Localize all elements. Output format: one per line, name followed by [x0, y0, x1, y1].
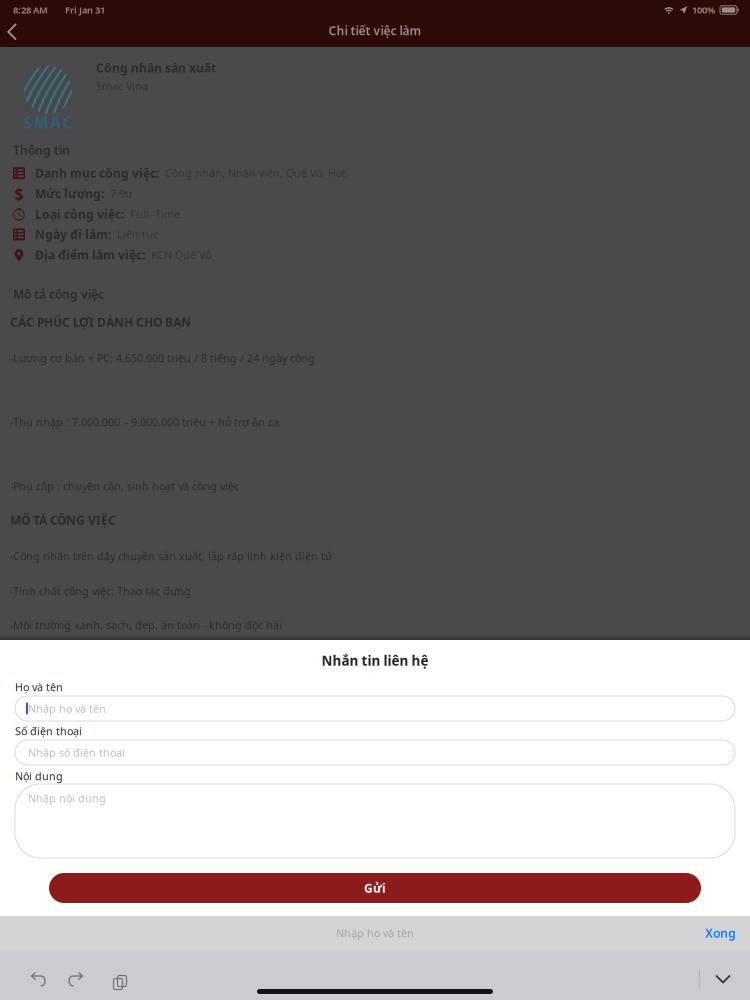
staticText: Danh mục công việc:	[35, 165, 159, 181]
button[interactable]: Undo	[24, 964, 54, 994]
staticText: Công nhân, Nhân viên, Quế Võ, Hot	[165, 166, 346, 180]
staticText: -Môi trường xanh, sạch, đẹp, an toàn - k…	[10, 618, 282, 632]
staticText: -Lương cơ bản + PC: 4.650.000 triệu / 8 …	[10, 351, 315, 365]
staticText: Nhập họ và tên	[28, 701, 106, 716]
staticText: -Tính chất công việc: Thao tác đứng	[10, 584, 191, 598]
staticText: 7-9tr	[110, 186, 133, 201]
button[interactable]: Paste	[102, 964, 132, 994]
staticText: C	[63, 112, 73, 133]
staticText: Địa điểm làm việc:	[35, 247, 145, 263]
staticText: Chi tiết việc làm	[328, 22, 421, 38]
staticText: Mức lương:	[35, 186, 104, 201]
staticText: Liên tục	[117, 227, 158, 241]
staticText: Nhập họ và tên	[336, 926, 414, 940]
staticText: Họ và tên	[15, 680, 63, 694]
staticText: KCN Quế Võ	[151, 248, 211, 262]
staticText: M	[34, 112, 49, 133]
button[interactable]: Gửi	[49, 873, 701, 903]
staticText: -Phụ cấp : chuyên cần, sinh hoạt và công…	[10, 479, 239, 493]
staticText: Nhập nội dung	[28, 791, 106, 805]
staticText: Số điện thoại	[15, 724, 82, 738]
button[interactable]: Hide keyboard	[700, 964, 746, 994]
staticText: S	[23, 112, 32, 133]
staticText: Mô tả công việc	[13, 286, 104, 302]
staticText: Loại công việc:	[35, 206, 124, 222]
staticText: Smac Vina	[96, 79, 148, 93]
staticText: Nhắn tin liên hệ	[321, 652, 428, 669]
staticText: 100%	[692, 4, 715, 16]
staticText: Fri Jan 31	[65, 4, 105, 16]
staticText: Thông tin	[13, 142, 70, 158]
staticText: Full--Time.	[130, 207, 183, 221]
staticText: CÁC PHÚC LỢI DÀNH CHO BẠN	[10, 314, 191, 330]
staticText: Nội dung	[15, 769, 63, 783]
staticText: $	[14, 183, 23, 204]
staticText: Công nhân sản xuất	[96, 60, 216, 76]
staticText: -Công nhân trên dây chuyền sản xuất, lắp…	[10, 549, 332, 563]
staticText: Nhập số điện thoại	[28, 745, 125, 760]
button[interactable]: Redo	[60, 964, 90, 994]
staticText: -Thu nhập : 7.000.000 – 9.000.000 triệu …	[10, 415, 279, 429]
staticText: Gửi	[364, 880, 386, 896]
staticText: A	[50, 112, 61, 133]
staticText: MÔ TẢ CÔNG VIỆC	[10, 512, 116, 528]
staticText: Ngày đi làm:	[35, 226, 111, 242]
button[interactable]: Xong	[696, 920, 745, 946]
staticText: 8:28 AM	[13, 4, 48, 16]
button[interactable]: Back	[0, 20, 31, 44]
staticText: Xong	[705, 925, 736, 941]
